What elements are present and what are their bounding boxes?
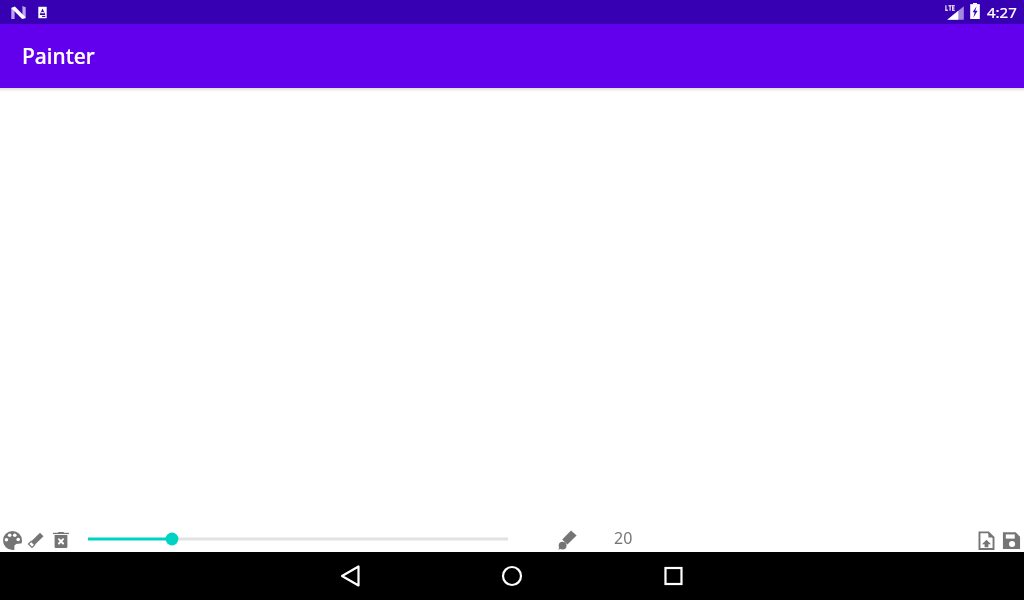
staticText: 20 (614, 527, 633, 549)
staticText: Painter (22, 42, 95, 71)
button[interactable]: Clear canvas (53, 526, 69, 552)
button[interactable]: Recent apps (650, 552, 698, 600)
button[interactable]: Back (327, 552, 375, 600)
button[interactable]: Save image (1002, 526, 1021, 552)
button[interactable]: Choose colour (3, 526, 22, 552)
button[interactable]: Load image (977, 526, 996, 552)
button[interactable]: Eraser (28, 526, 44, 552)
staticText: 4:27 (987, 2, 1017, 22)
button[interactable]: Home (489, 552, 537, 600)
button[interactable]: Brush (557, 526, 577, 552)
button[interactable]: Brush size (88, 526, 508, 552)
